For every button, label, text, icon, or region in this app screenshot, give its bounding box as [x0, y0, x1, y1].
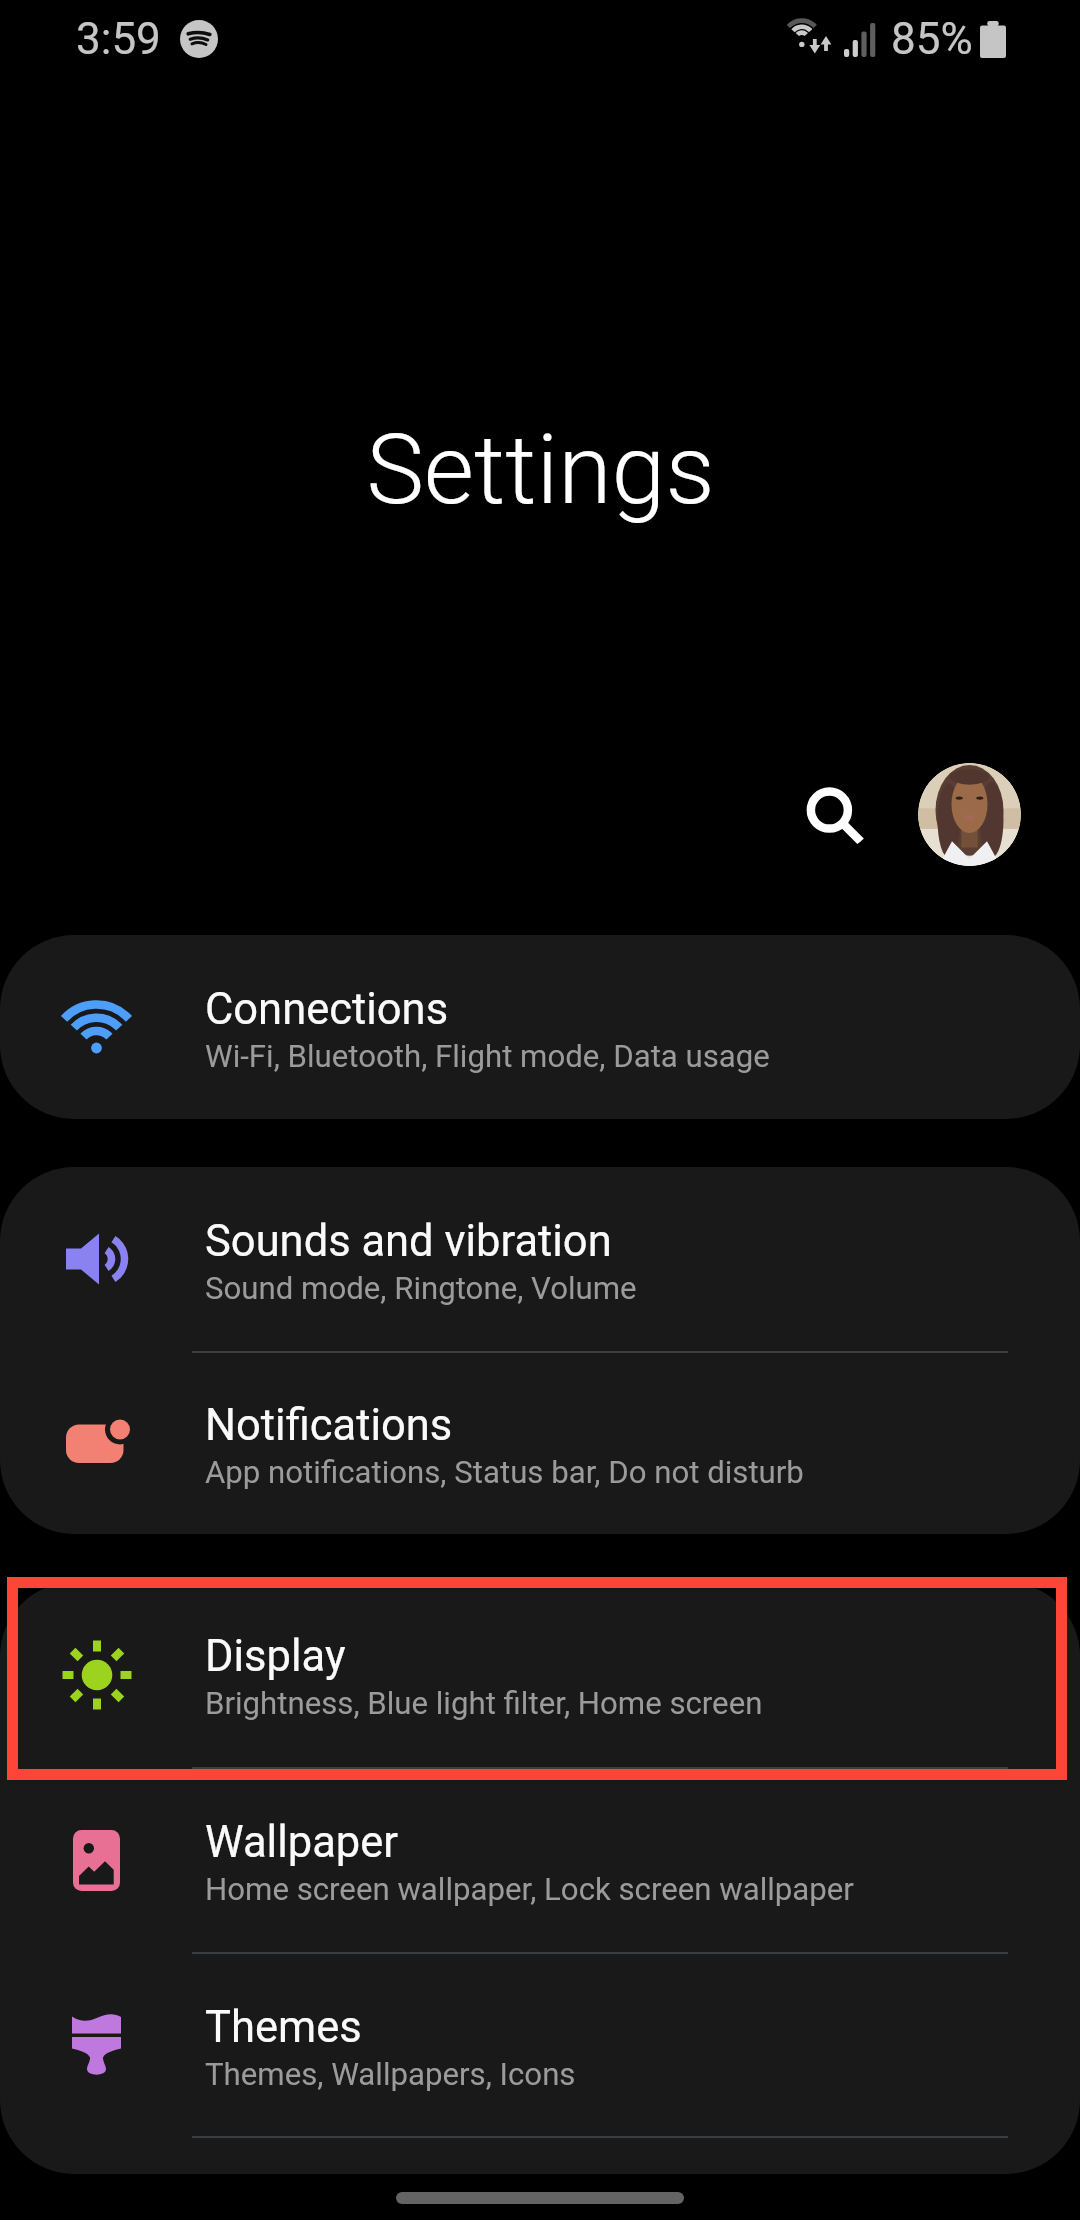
button[interactable]: Search — [780, 755, 878, 853]
button[interactable]: Display — [0, 1582, 1080, 1767]
staticText: Sound mode, Ringtone, Volume — [205, 1270, 637, 1307]
staticText: Themes — [205, 2002, 362, 2053]
staticText: Wi-Fi, Bluetooth, Flight mode, Data usag… — [205, 1038, 770, 1075]
button[interactable]: Wallpaper — [0, 1769, 1080, 1952]
staticText: 85% — [891, 13, 973, 65]
staticText: Themes, Wallpapers, Icons — [205, 2056, 576, 2093]
button[interactable]: Connections — [0, 935, 1080, 1119]
button[interactable]: Notifications — [0, 1353, 1080, 1534]
staticText: Brightness, Blue light filter, Home scre… — [205, 1685, 763, 1722]
staticText: App notifications, Status bar, Do not di… — [205, 1454, 804, 1491]
staticText: Sounds and vibration — [205, 1216, 612, 1267]
staticText: Connections — [205, 984, 449, 1035]
staticText: Display — [205, 1631, 346, 1682]
button[interactable]: Themes — [0, 1954, 1080, 2136]
staticText: Settings — [366, 413, 715, 527]
staticText: 3:59 — [76, 13, 161, 65]
staticText: Notifications — [205, 1400, 453, 1451]
staticText: Wallpaper — [205, 1817, 399, 1868]
staticText: Home screen wallpaper, Lock screen wallp… — [205, 1871, 854, 1908]
button[interactable]: Profile — [918, 763, 1021, 866]
button[interactable]: Sounds and vibration — [0, 1167, 1080, 1351]
